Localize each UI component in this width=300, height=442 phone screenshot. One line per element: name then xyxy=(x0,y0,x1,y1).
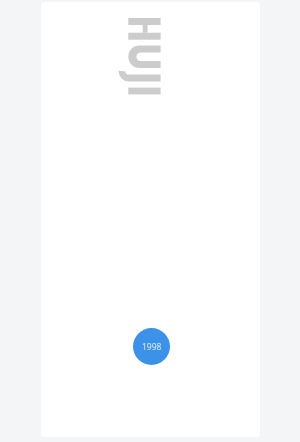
other: HUJI xyxy=(115,16,165,102)
button[interactable]: Shutter, 1998 film effect xyxy=(133,328,170,365)
staticText: 1998 xyxy=(142,341,162,353)
